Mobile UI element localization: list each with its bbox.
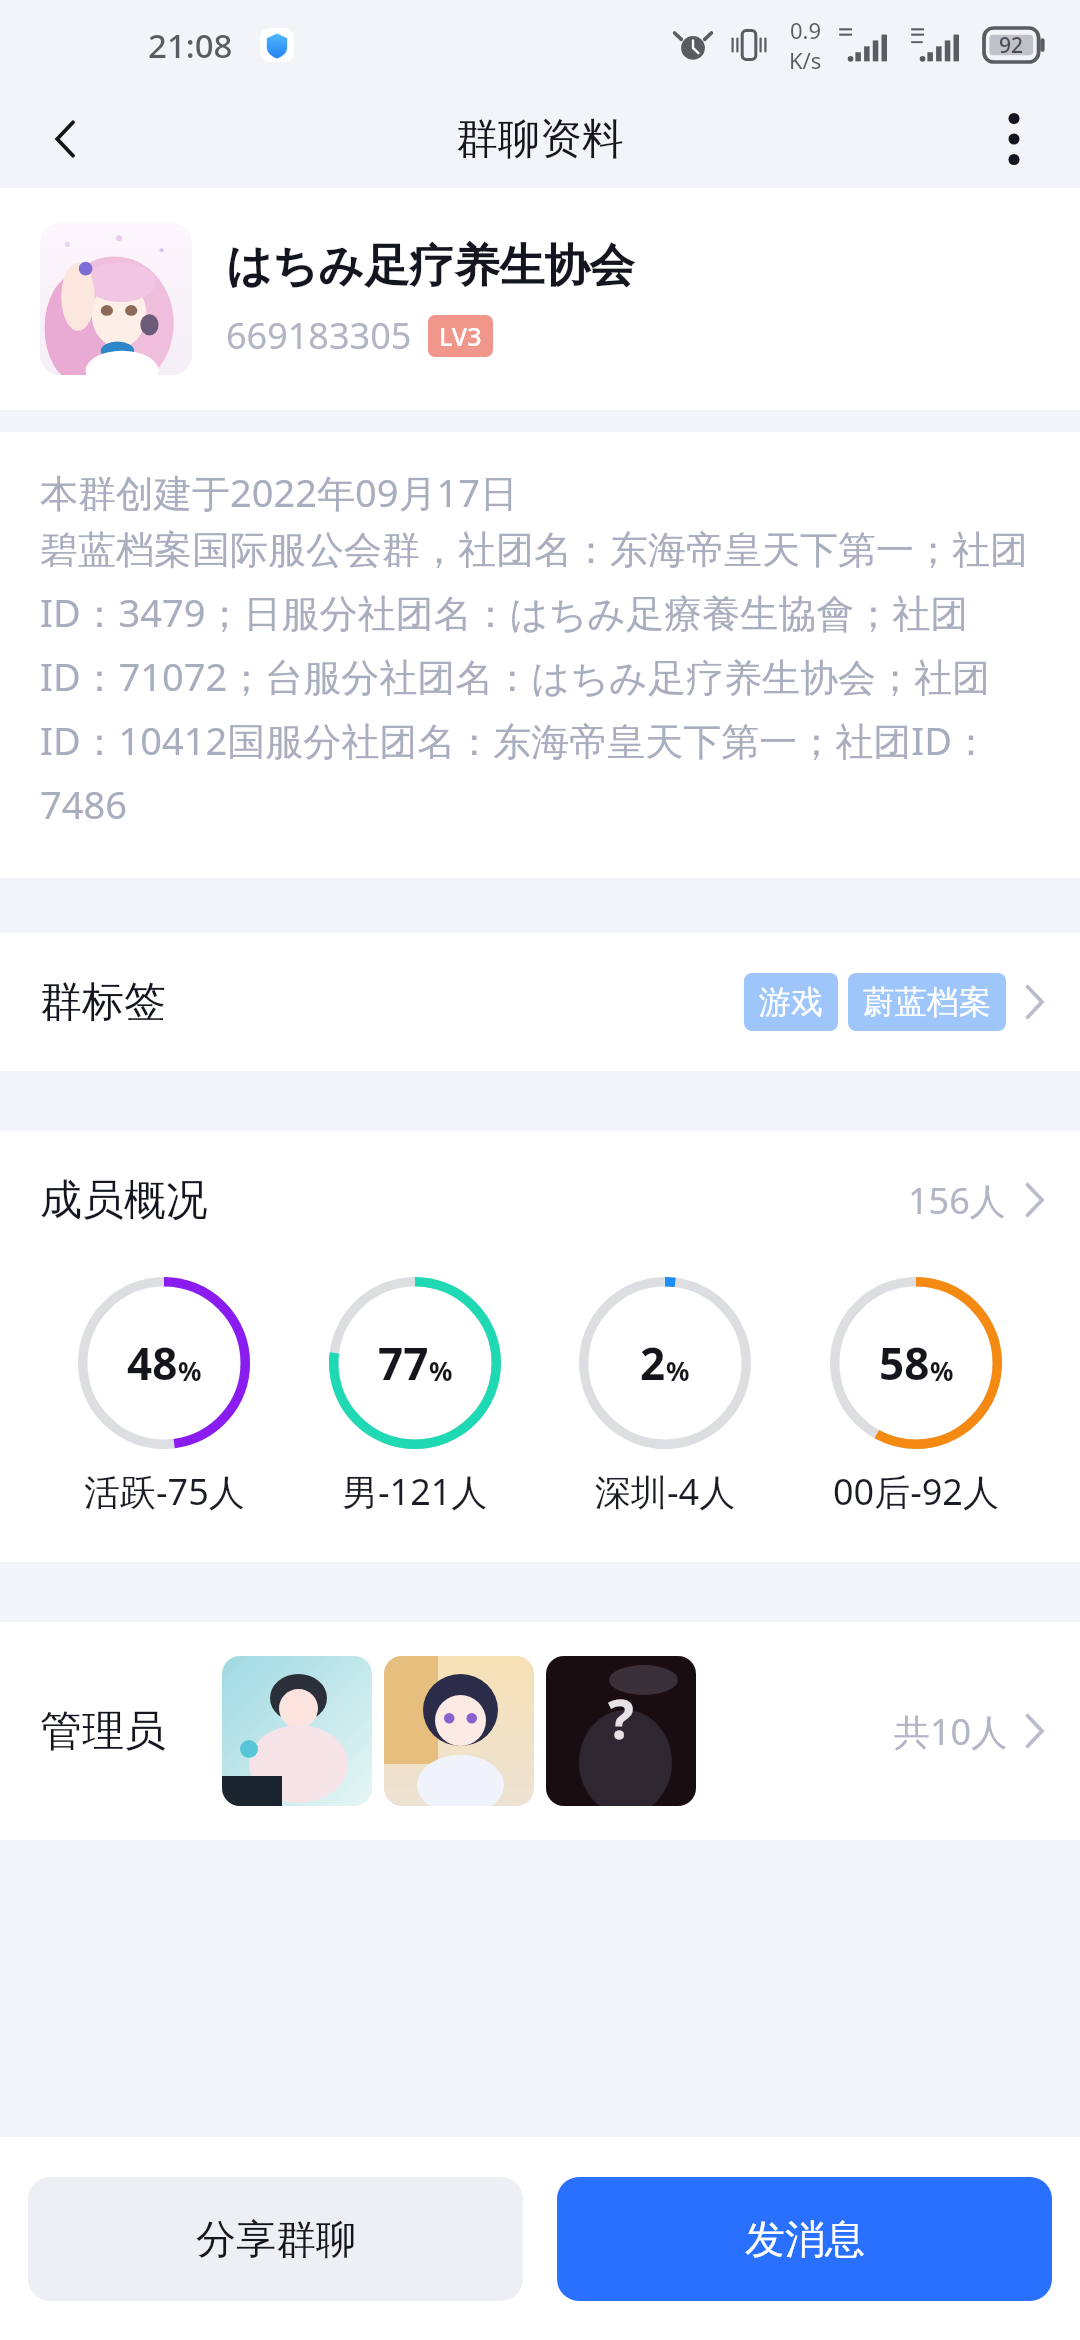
staticText: 深圳-4人 bbox=[595, 1467, 736, 1516]
staticText: ? bbox=[608, 1681, 634, 1755]
button[interactable]: 本群创建于2022年09月17日 bbox=[0, 432, 1080, 878]
button[interactable]: More options bbox=[966, 91, 1062, 187]
staticText: 群标签 bbox=[40, 976, 166, 1029]
staticText: % bbox=[930, 1353, 954, 1388]
staticText: 92 bbox=[999, 31, 1024, 60]
staticText: 成员概况 bbox=[40, 1174, 208, 1227]
button[interactable]: 成员概况 bbox=[0, 1131, 1080, 1269]
button[interactable]: Back bbox=[18, 91, 114, 187]
staticText: 蔚蓝档案 bbox=[863, 982, 991, 1022]
staticText: 58 bbox=[879, 1333, 930, 1393]
staticText: 分享群聊 bbox=[196, 2214, 356, 2264]
button[interactable]: 发消息 bbox=[557, 2177, 1052, 2301]
staticText: 游戏 bbox=[759, 982, 823, 1022]
staticText: 共10人 bbox=[894, 1707, 1008, 1756]
staticText: % bbox=[429, 1353, 453, 1388]
staticText: 0.9 bbox=[790, 15, 822, 45]
staticText: 669183305 bbox=[226, 311, 412, 360]
staticText: 48 bbox=[127, 1333, 178, 1393]
button[interactable]: はちみ足疗养生协会 bbox=[0, 188, 1080, 410]
staticText: % bbox=[178, 1353, 202, 1388]
button[interactable]: 群标签 bbox=[0, 933, 1080, 1071]
staticText: 2 bbox=[640, 1333, 666, 1393]
staticText: K/s bbox=[789, 45, 822, 75]
staticText: 碧蓝档案国际服公会群，社团名：东海帝皇天下第一；社团ID：3479；日服分社团名… bbox=[40, 526, 1044, 830]
staticText: 156人 bbox=[908, 1176, 1006, 1225]
staticText: 00后-92人 bbox=[833, 1467, 999, 1516]
staticText: 男-121人 bbox=[342, 1467, 488, 1516]
staticText: 本群创建于2022年09月17日 bbox=[40, 466, 518, 518]
staticText: 活跃-75人 bbox=[84, 1467, 245, 1516]
staticText: 发消息 bbox=[745, 2214, 865, 2264]
staticText: 管理员 bbox=[40, 1705, 166, 1758]
button[interactable]: 管理员 bbox=[0, 1622, 1080, 1840]
staticText: 21:08 bbox=[148, 23, 233, 68]
staticText: 群聊资料 bbox=[456, 113, 624, 166]
staticText: はちみ足疗养生协会 bbox=[226, 238, 635, 295]
staticText: 77 bbox=[378, 1333, 429, 1393]
staticText: LV3 bbox=[439, 319, 482, 353]
button[interactable]: 分享群聊 bbox=[28, 2177, 523, 2301]
staticText: % bbox=[666, 1353, 690, 1388]
